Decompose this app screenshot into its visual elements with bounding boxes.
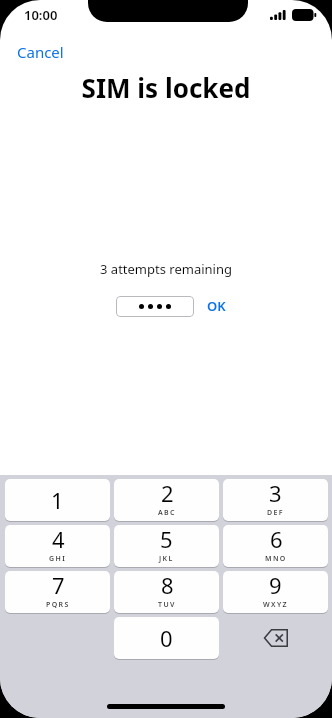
staticText: 10:00 — [24, 6, 58, 24]
staticText: OK — [207, 297, 226, 315]
button[interactable]: 7 — [5, 571, 110, 613]
staticText: SIM is locked — [0, 70, 332, 105]
staticText: JKL — [159, 554, 174, 564]
button[interactable]: 3 — [223, 479, 328, 521]
staticText: WXYZ — [263, 600, 288, 610]
staticText: MNO — [265, 554, 287, 564]
staticText: 6 — [270, 525, 283, 554]
button[interactable]: 5 — [114, 525, 219, 567]
button[interactable]: 6 — [223, 525, 328, 567]
staticText: 2 — [161, 479, 174, 508]
button[interactable]: 8 — [114, 571, 219, 613]
staticText: 0 — [160, 623, 173, 653]
button[interactable]: 0 — [114, 617, 219, 659]
staticText: 8 — [161, 571, 174, 600]
staticText: 9 — [269, 571, 282, 600]
staticText: 3 — [269, 479, 282, 508]
staticText: TUV — [158, 600, 176, 610]
button[interactable]: 9 — [223, 571, 328, 613]
button[interactable]: OK — [202, 293, 231, 319]
button[interactable]: 2 — [114, 479, 219, 521]
staticText: 7 — [52, 571, 65, 600]
staticText: 3 attempts remaining — [0, 260, 332, 278]
staticText: 1 — [51, 485, 64, 515]
staticText: GHI — [49, 554, 67, 564]
staticText: ABC — [158, 508, 176, 518]
button[interactable]: SIM PIN entry — [116, 296, 194, 317]
button[interactable]: 1 — [5, 479, 110, 521]
staticText: Cancel — [17, 42, 64, 60]
button[interactable]: 4 — [5, 525, 110, 567]
staticText: 5 — [160, 525, 173, 554]
button[interactable]: Cancel — [0, 38, 76, 64]
staticText: DEF — [267, 508, 284, 518]
staticText: PQRS — [46, 600, 70, 610]
staticText: 4 — [52, 525, 65, 554]
button[interactable]: Delete — [223, 617, 328, 659]
